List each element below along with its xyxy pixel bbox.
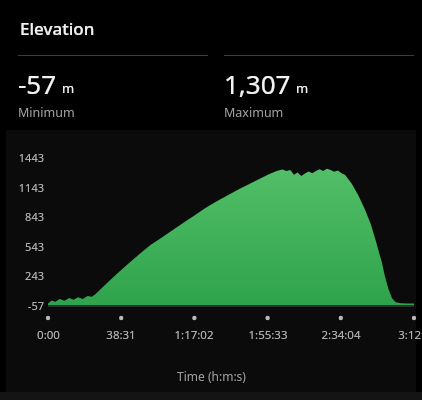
staticText: m bbox=[62, 79, 75, 97]
staticText: 1:55:33 bbox=[248, 327, 288, 343]
staticText: -57 bbox=[18, 66, 57, 101]
staticText: 243 bbox=[25, 268, 44, 283]
staticText: 1143 bbox=[18, 180, 44, 195]
staticText: Elevation bbox=[20, 17, 95, 40]
staticText: 0:00 bbox=[37, 327, 60, 343]
button[interactable]: -57 bbox=[18, 66, 83, 121]
button[interactable] bbox=[6, 130, 416, 392]
staticText: Minimum bbox=[18, 104, 75, 121]
staticText: 3:12:3 bbox=[398, 327, 422, 343]
staticText: 843 bbox=[25, 209, 44, 224]
staticText: 2:34:04 bbox=[321, 327, 361, 343]
button[interactable]: 1,307 bbox=[224, 66, 317, 121]
staticText: 1,307 bbox=[224, 66, 291, 101]
staticText: 543 bbox=[25, 239, 44, 254]
button[interactable]: Elevation bbox=[20, 17, 95, 40]
staticText: Time (h:m:s) bbox=[177, 368, 246, 384]
staticText: 38:31 bbox=[106, 327, 136, 343]
staticText: -57 bbox=[27, 298, 44, 313]
staticText: 1:17:02 bbox=[174, 327, 214, 343]
staticText: Maximum bbox=[224, 104, 284, 121]
staticText: 1443 bbox=[18, 150, 44, 165]
staticText: m bbox=[296, 79, 309, 97]
